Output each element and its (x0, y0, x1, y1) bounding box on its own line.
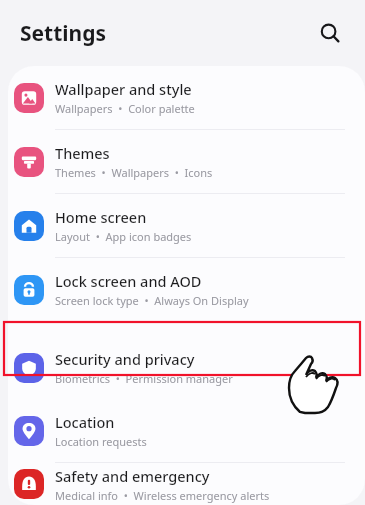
staticText: Biometrics • Permission manager (55, 371, 233, 386)
staticText: Wallpapers • Color palette (55, 101, 195, 116)
staticText: Settings (20, 19, 107, 48)
staticText: Location requests (55, 434, 147, 449)
button[interactable]: Security and privacy (8, 336, 365, 399)
button[interactable]: Location (8, 399, 365, 462)
staticText: Medical info • Wireless emergency alerts (55, 488, 270, 503)
button[interactable]: Wallpaper and style (8, 66, 365, 129)
button[interactable]: Lock screen and AOD (8, 258, 365, 321)
staticText: Screen lock type • Always On Display (55, 293, 249, 308)
button[interactable]: Home screen (8, 194, 365, 257)
staticText: Home screen (55, 207, 147, 227)
staticText: Wallpaper and style (55, 79, 192, 99)
button[interactable]: Safety and emergency (8, 463, 365, 505)
button[interactable]: Search (313, 16, 347, 50)
staticText: Themes • Wallpapers • Icons (55, 165, 213, 180)
staticText: Themes (55, 143, 110, 163)
staticText: Security and privacy (55, 349, 195, 369)
button[interactable]: Themes (8, 130, 365, 193)
staticText: Lock screen and AOD (55, 271, 202, 291)
staticText: Location (55, 412, 115, 432)
staticText: Layout • App icon badges (55, 229, 192, 244)
staticText: Safety and emergency (55, 466, 210, 486)
